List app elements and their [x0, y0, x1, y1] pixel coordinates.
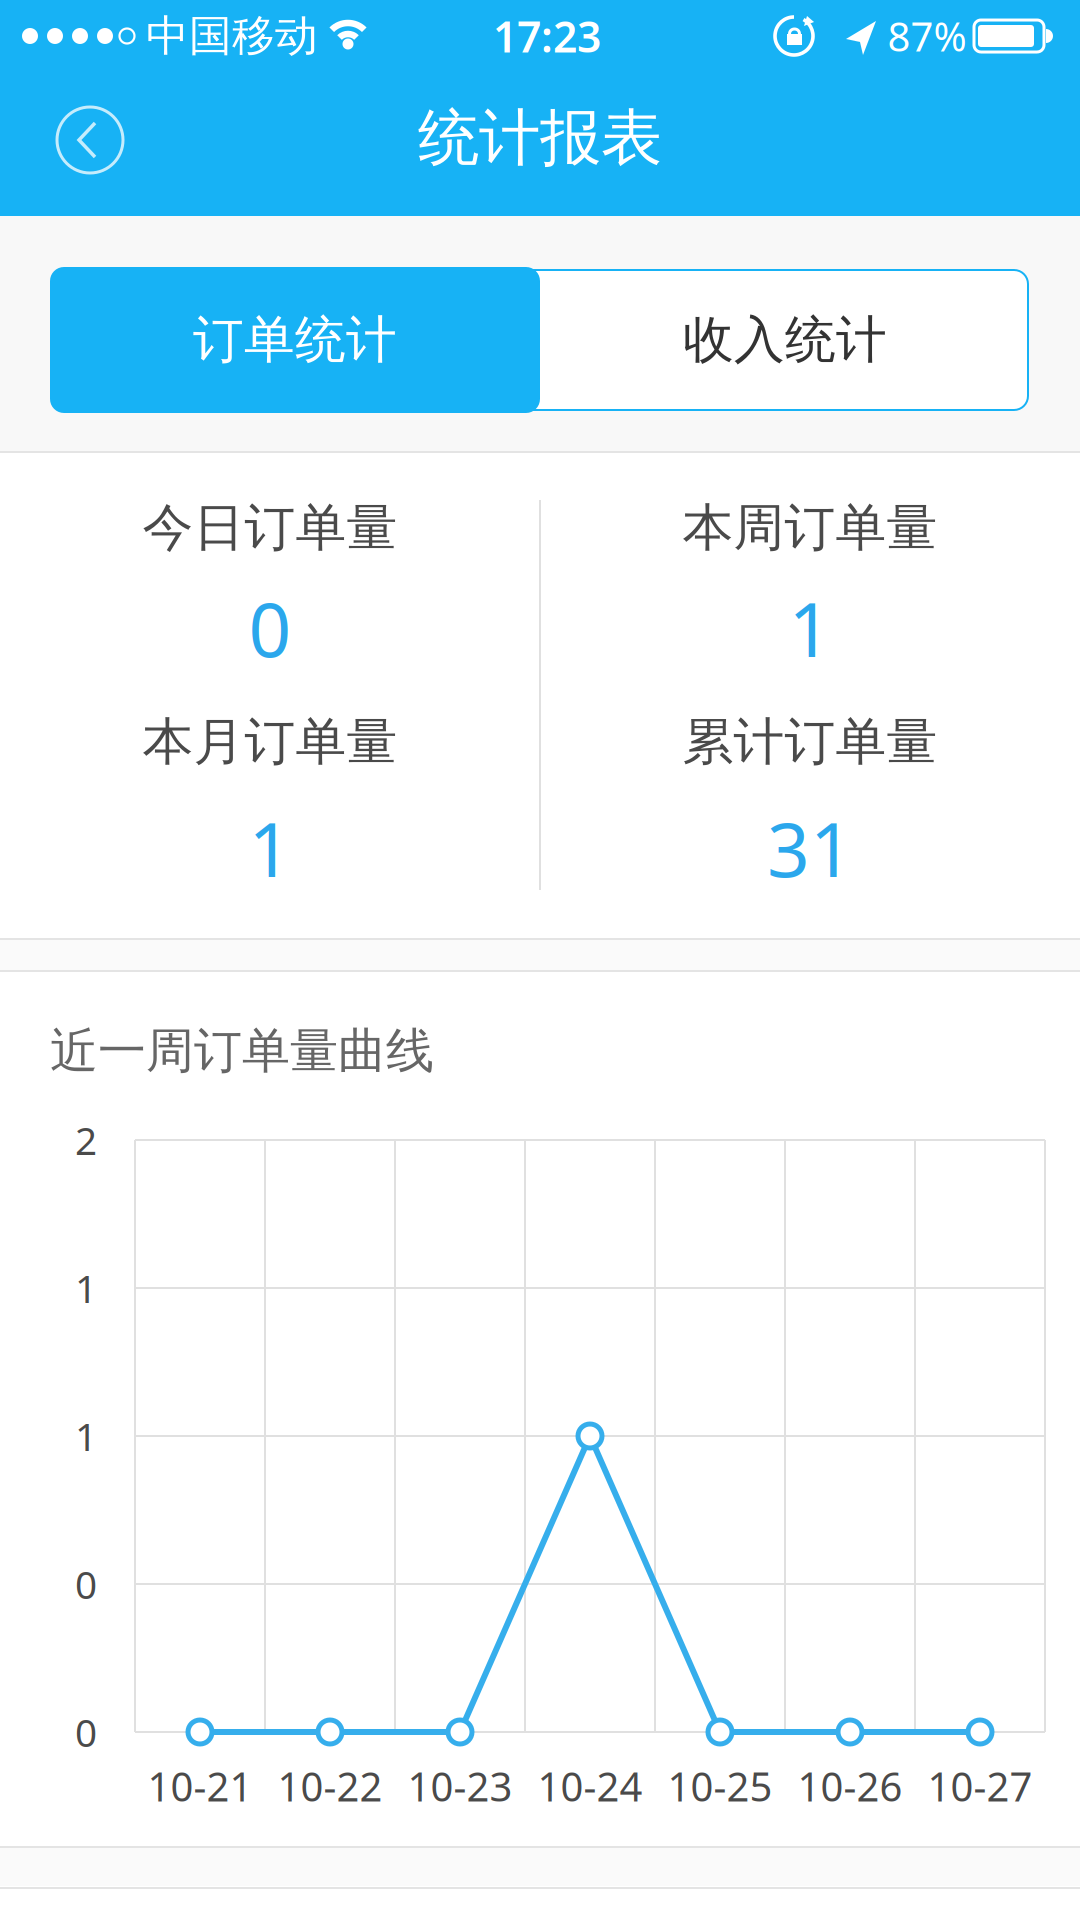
staticText: 10-24	[537, 1759, 642, 1812]
staticText: 统计报表	[418, 100, 662, 176]
staticText: 1	[75, 1410, 97, 1462]
staticText: 本周订单量	[682, 497, 937, 559]
staticText: 1	[248, 798, 291, 898]
staticText: 累计订单量	[682, 711, 937, 773]
staticText: 0	[248, 578, 291, 678]
staticText: 1	[75, 1262, 97, 1314]
staticText: 87%	[887, 9, 966, 62]
staticText: 10-26	[797, 1759, 902, 1812]
staticText: 10-22	[277, 1759, 382, 1812]
staticText: 10-21	[147, 1759, 252, 1812]
staticText: 订单统计	[193, 309, 397, 371]
button[interactable]: Back	[50, 100, 130, 180]
staticText: 10-25	[667, 1759, 772, 1812]
staticText: 31	[767, 798, 853, 898]
staticText: 1	[788, 578, 831, 678]
staticText: 近一周订单量曲线	[50, 1021, 434, 1080]
staticText: 10-23	[407, 1759, 512, 1812]
staticText: 0	[75, 1558, 97, 1610]
button[interactable]: 订单统计	[50, 267, 540, 413]
button[interactable]: 收入统计	[540, 267, 1030, 413]
staticText: 中国移动	[146, 10, 318, 62]
staticText: 今日订单量	[142, 497, 397, 559]
staticText: 收入统计	[683, 309, 887, 371]
staticText: 10-27	[927, 1759, 1032, 1812]
staticText: 17:23	[493, 8, 601, 64]
staticText: 本月订单量	[142, 711, 397, 773]
staticText: 0	[75, 1706, 97, 1758]
staticText: 2	[75, 1114, 97, 1166]
